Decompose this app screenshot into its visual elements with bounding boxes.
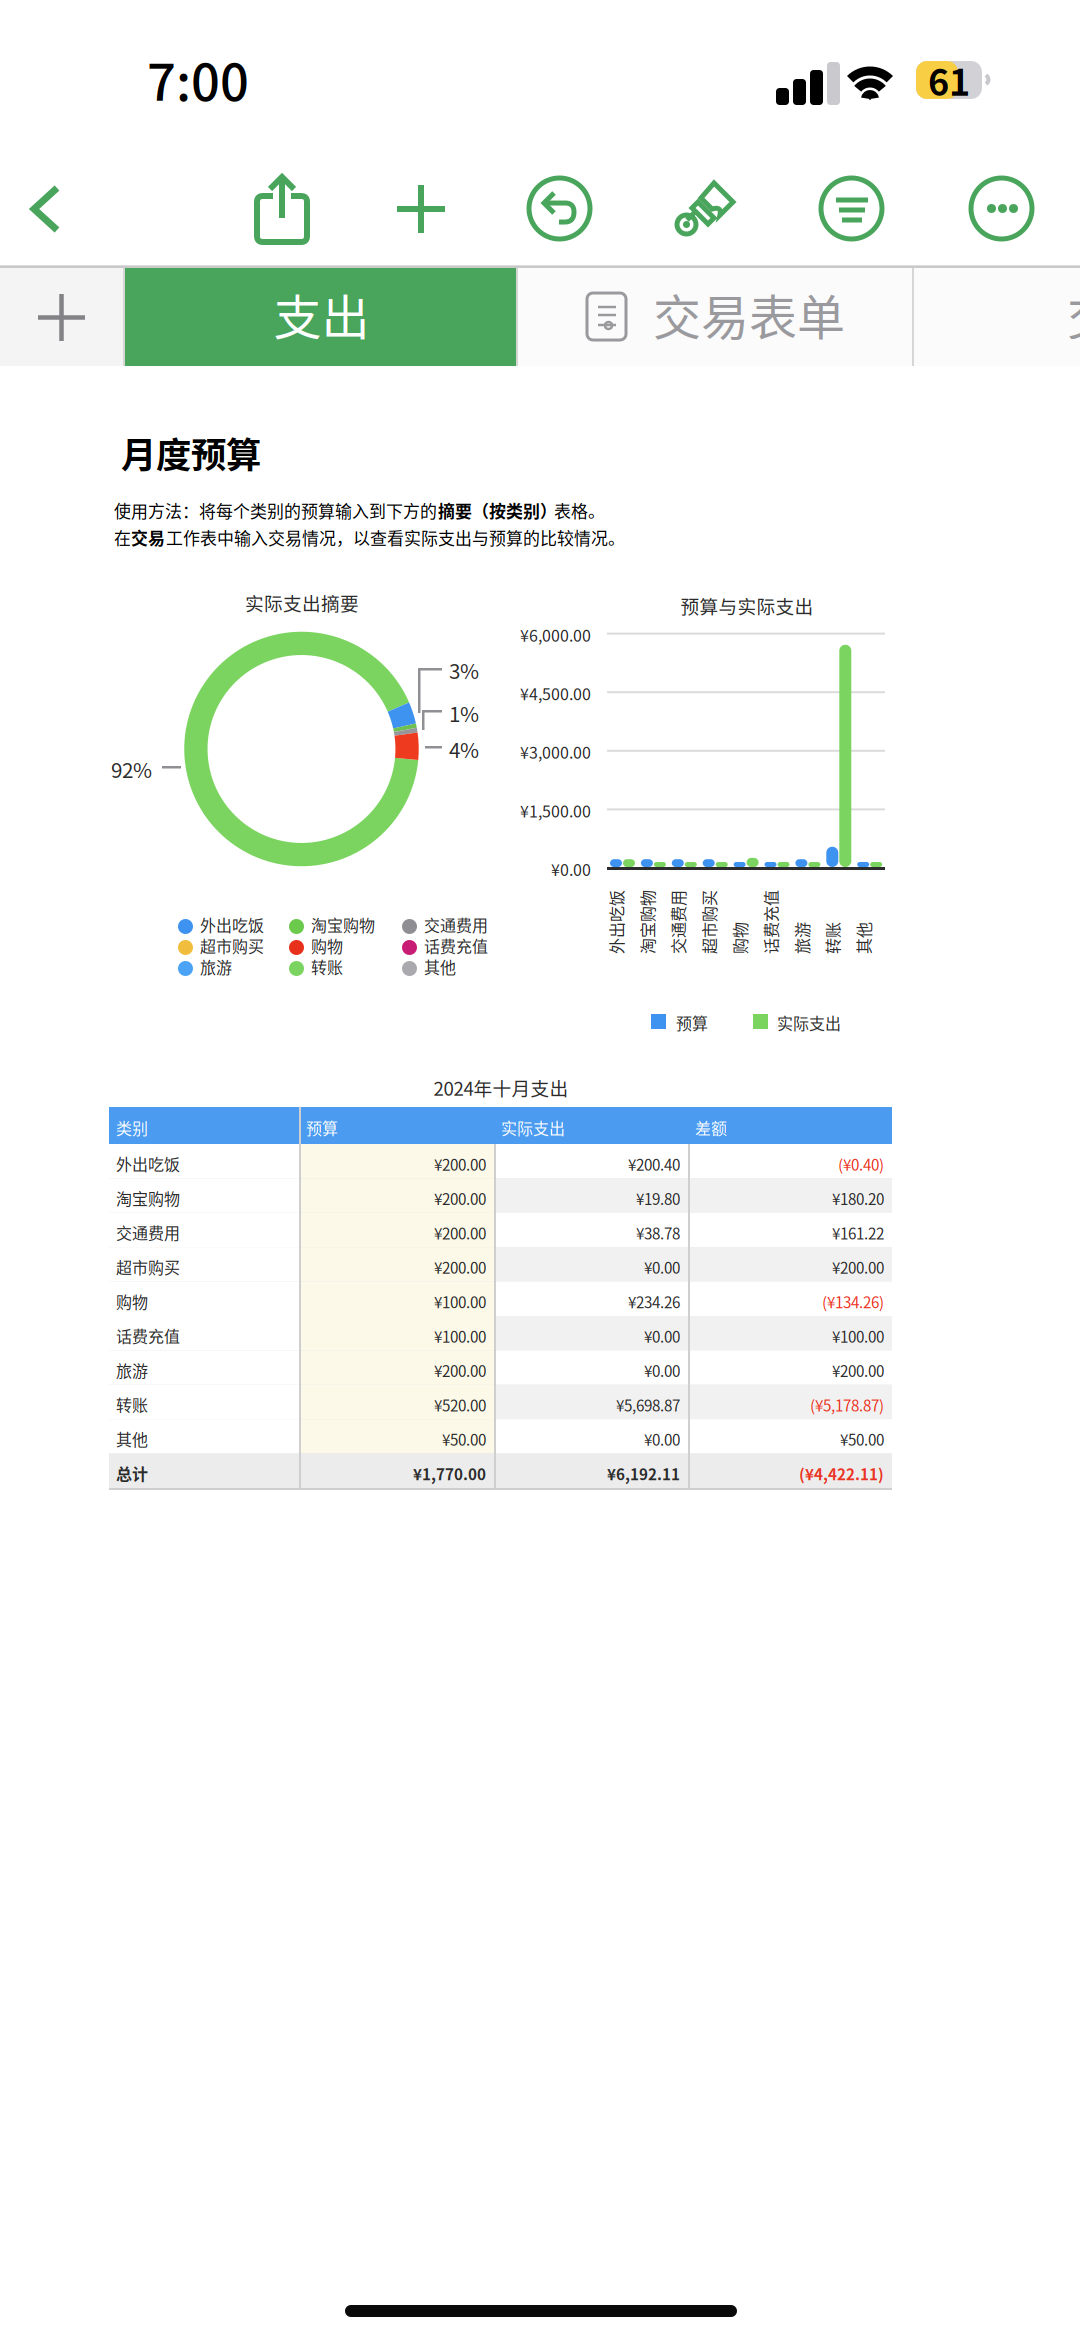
- staticText: 月度预算: [121, 427, 261, 478]
- staticText: 支出: [273, 279, 369, 349]
- staticText: 旅游: [200, 955, 232, 978]
- staticText: 实际支出摘要: [245, 589, 359, 616]
- staticText: ¥180.20: [832, 1187, 884, 1209]
- staticText: ¥3,000.00: [520, 740, 591, 763]
- button[interactable]: Add sheet: [0, 268, 124, 366]
- staticText: 使用方法：将每个类别的预算输入到下方的: [114, 498, 437, 522]
- button[interactable]: Undo: [523, 172, 597, 246]
- staticText: 购物: [116, 1290, 148, 1313]
- staticText: 话费充值: [730, 902, 794, 926]
- staticText: 外出吃饭: [116, 1152, 180, 1175]
- staticText: 差额: [695, 1116, 727, 1139]
- staticText: 交易: [131, 525, 165, 549]
- button[interactable]: 交易表单: [518, 268, 914, 366]
- staticText: ¥200.00: [434, 1222, 486, 1244]
- staticText: 交通费用: [116, 1221, 180, 1244]
- staticText: 92%: [111, 754, 152, 784]
- staticText: 外出吃饭: [200, 913, 264, 936]
- staticText: ¥200.00: [832, 1256, 884, 1278]
- staticText: 在: [114, 525, 131, 549]
- staticText: ¥100.00: [832, 1325, 884, 1347]
- staticText: (¥134.26): [822, 1291, 884, 1313]
- button[interactable]: 支出: [125, 268, 518, 366]
- staticText: 转账: [792, 902, 824, 926]
- staticText: (¥5,178.87): [810, 1394, 884, 1416]
- staticText: 类别: [116, 1116, 148, 1139]
- staticText: 超市购买: [200, 934, 264, 957]
- staticText: 表格。: [554, 498, 605, 522]
- button[interactable]: Document options: [815, 172, 889, 246]
- staticText: ¥6,000.00: [520, 623, 591, 646]
- staticText: 实际支出: [777, 1011, 841, 1034]
- staticText: ¥5,698.87: [616, 1394, 680, 1416]
- staticText: 摘要（按类别）: [438, 498, 557, 522]
- staticText: ¥161.22: [832, 1222, 884, 1244]
- staticText: ¥50.00: [840, 1428, 884, 1450]
- staticText: 工作表中输入交易情况，以查看实际支出与预算的比较情况。: [166, 525, 625, 549]
- staticText: 预算: [306, 1116, 338, 1139]
- staticText: 交通费用: [638, 902, 702, 926]
- staticText: 超市购买: [669, 902, 733, 926]
- staticText: ¥200.00: [434, 1187, 486, 1209]
- staticText: 2024年十月支出: [433, 1074, 568, 1101]
- staticText: ¥6,192.11: [607, 1463, 680, 1485]
- staticText: 其他: [424, 955, 456, 978]
- staticText: ¥234.26: [628, 1291, 680, 1313]
- staticText: 旅游: [761, 902, 793, 926]
- staticText: 话费充值: [424, 934, 488, 957]
- button[interactable]: More: [965, 172, 1039, 246]
- staticText: ¥1,500.00: [520, 799, 591, 822]
- staticText: 预算: [676, 1011, 708, 1034]
- staticText: ¥19.80: [636, 1187, 680, 1209]
- staticText: ¥520.00: [434, 1394, 486, 1416]
- staticText: 交: [1067, 279, 1080, 349]
- staticText: 其他: [823, 902, 855, 926]
- staticText: 淘宝购物: [116, 1186, 180, 1210]
- staticText: (¥0.40): [838, 1153, 884, 1175]
- staticText: ¥0.00: [551, 857, 591, 881]
- staticText: ¥1,770.00: [413, 1463, 486, 1485]
- staticText: 交通费用: [424, 913, 488, 936]
- staticText: 超市购买: [116, 1255, 180, 1278]
- staticText: 实际支出: [501, 1116, 565, 1139]
- staticText: 购物: [311, 934, 343, 957]
- staticText: 淘宝购物: [311, 913, 375, 936]
- staticText: 转账: [116, 1393, 148, 1416]
- staticText: ¥200.00: [832, 1359, 884, 1381]
- staticText: 旅游: [116, 1358, 148, 1382]
- staticText: 外出吃饭: [576, 902, 640, 926]
- staticText: 购物: [700, 902, 732, 926]
- staticText: ¥38.78: [636, 1222, 680, 1244]
- staticText: ¥200.00: [434, 1359, 486, 1381]
- button[interactable]: Back: [8, 172, 82, 246]
- staticText: 交易表单: [653, 279, 845, 349]
- staticText: ¥100.00: [434, 1291, 486, 1313]
- staticText: 其他: [116, 1427, 148, 1450]
- staticText: ¥200.00: [434, 1153, 486, 1175]
- staticText: 总计: [116, 1462, 148, 1485]
- staticText: ¥4,500.00: [520, 682, 591, 705]
- button[interactable]: 交易: [914, 268, 1080, 366]
- staticText: ¥0.00: [644, 1428, 680, 1450]
- staticText: 转账: [311, 955, 343, 978]
- staticText: (¥4,422.11): [799, 1463, 884, 1485]
- staticText: ¥200.40: [628, 1153, 680, 1175]
- staticText: 4%: [449, 734, 479, 764]
- staticText: 预算与实际支出: [680, 592, 813, 619]
- staticText: 7:00: [147, 42, 249, 115]
- button[interactable]: Insert: [384, 172, 458, 246]
- staticText: ¥200.00: [434, 1256, 486, 1278]
- staticText: 淘宝购物: [607, 902, 671, 926]
- staticText: ¥100.00: [434, 1325, 486, 1347]
- staticText: 61: [928, 54, 970, 106]
- button[interactable]: Share: [245, 172, 319, 246]
- staticText: 话费充值: [116, 1324, 180, 1347]
- staticText: ¥0.00: [644, 1325, 680, 1347]
- staticText: 1%: [449, 698, 479, 728]
- staticText: ¥0.00: [644, 1256, 680, 1278]
- button[interactable]: Format: [669, 172, 743, 246]
- staticText: ¥50.00: [442, 1428, 486, 1450]
- staticText: ¥0.00: [644, 1359, 680, 1381]
- staticText: 3%: [449, 655, 479, 685]
